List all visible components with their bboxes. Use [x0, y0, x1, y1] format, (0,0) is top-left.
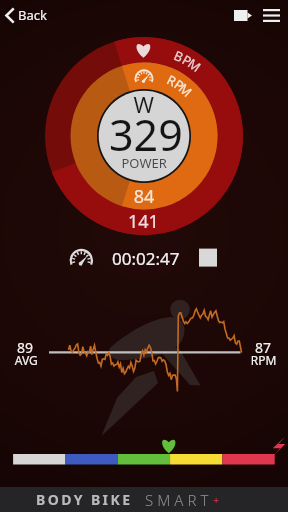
button[interactable]: Back — [0, 0, 57, 30]
staticText: + — [213, 492, 220, 507]
button[interactable]: Cadence chart — [8, 290, 280, 420]
button[interactable]: Battery — [229, 0, 257, 30]
button[interactable]: Power gauge — [45, 37, 243, 235]
button[interactable]: Heart rate zones — [13, 450, 275, 468]
button[interactable]: Menu — [257, 0, 288, 30]
button[interactable]: BODY BIKE — [0, 487, 288, 512]
staticText: Back — [18, 6, 47, 24]
staticText: SMART — [145, 490, 213, 510]
staticText: BODY BIKE — [36, 490, 133, 509]
button[interactable]: Stop — [197, 246, 219, 268]
